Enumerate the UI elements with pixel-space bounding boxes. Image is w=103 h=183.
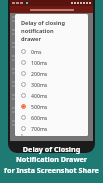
button[interactable]: 700ms <box>15 123 88 134</box>
button[interactable]: 800ms <box>15 134 88 136</box>
staticText: drawer <box>21 35 41 43</box>
staticText: 600ms <box>31 114 48 121</box>
staticText: for Insta Screenshot Share <box>4 165 99 175</box>
staticText: 700ms <box>31 125 48 132</box>
staticText: 500ms <box>31 103 48 110</box>
staticText: 300ms <box>31 81 48 88</box>
staticText: 400ms <box>31 92 48 99</box>
button[interactable]: 500ms <box>15 101 88 112</box>
button[interactable]: 300ms <box>15 79 88 90</box>
staticText: Delay of closing notification <box>21 19 83 35</box>
staticText: Delay of Closing Notification Drawer <box>3 144 100 164</box>
button[interactable]: 400ms <box>15 90 88 101</box>
staticText: 200ms <box>31 70 48 77</box>
staticText: 100ms <box>31 59 48 66</box>
staticText: 0ms <box>31 48 42 55</box>
button[interactable]: 200ms <box>15 68 88 79</box>
button[interactable]: 0ms <box>15 46 88 57</box>
button[interactable]: 100ms <box>15 57 88 68</box>
button[interactable]: 600ms <box>15 112 88 123</box>
